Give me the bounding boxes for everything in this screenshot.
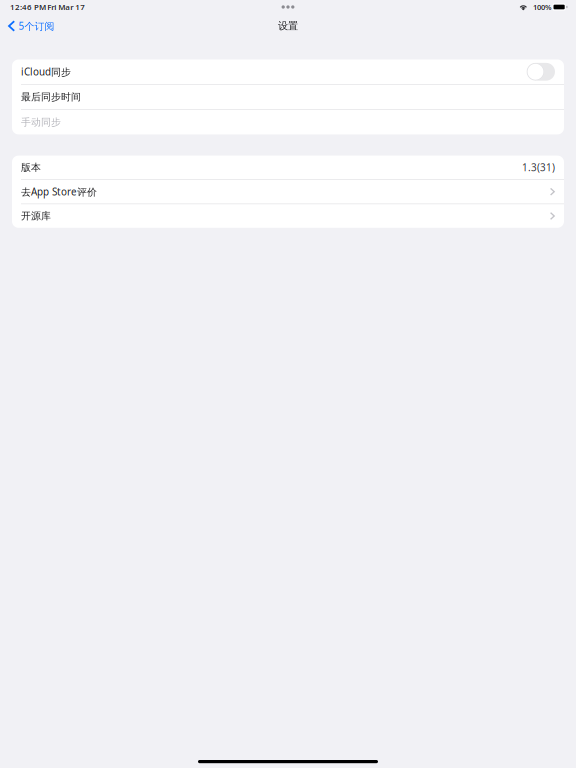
staticText: 100% <box>533 2 552 12</box>
staticText: 最后同步时间 <box>21 91 81 103</box>
staticText: 开源库 <box>21 210 51 222</box>
staticText: 5个订阅 <box>18 19 54 32</box>
staticText: Fri Mar 17 <box>47 2 85 12</box>
staticText: 设置 <box>278 20 298 32</box>
button[interactable]: 开源库 <box>12 204 564 228</box>
staticText: 去App Store评价 <box>21 185 97 198</box>
staticText: iCloud同步 <box>21 65 71 78</box>
button[interactable]: 手动同步 <box>12 110 564 134</box>
staticText: 12:46 PM <box>10 2 46 12</box>
button[interactable]: 5个订阅 <box>0 14 60 38</box>
staticText: 1.3(31) <box>522 161 555 174</box>
staticText: 版本 <box>21 161 41 173</box>
staticText: 手动同步 <box>21 116 61 128</box>
button[interactable]: 去App Store评价 <box>12 180 564 203</box>
button[interactable]: 最后同步时间 <box>12 85 564 109</box>
button[interactable]: iCloud同步 <box>12 59 564 84</box>
